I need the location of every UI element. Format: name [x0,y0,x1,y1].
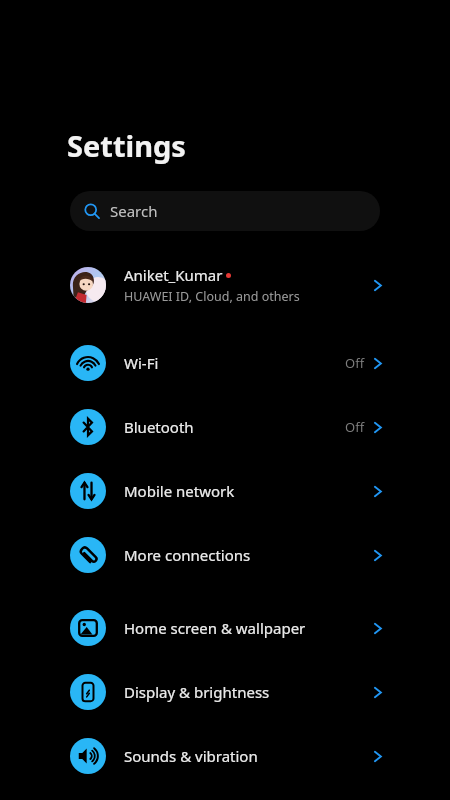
staticText: Search [110,201,158,221]
staticText: Sounds & vibration [124,746,371,766]
staticText: More connections [124,545,371,565]
button[interactable]: Mobile network [0,459,450,523]
staticText: Settings [67,126,186,165]
button[interactable]: More connections [0,523,450,587]
button[interactable]: Sounds & vibration [0,724,450,788]
button[interactable]: Aniket_Kumar [0,253,450,317]
staticText: HUAWEI ID, Cloud, and others [124,288,300,305]
button[interactable]: Search [70,191,380,231]
button[interactable]: Home screen & wallpaper [0,596,450,660]
staticText: Off [345,418,365,436]
button[interactable]: Display & brightness [0,660,450,724]
staticText: Wi-Fi [124,353,345,373]
staticText: Home screen & wallpaper [124,618,371,638]
button[interactable]: Bluetooth [0,395,450,459]
staticText: Mobile network [124,481,371,501]
staticText: Aniket_Kumar [124,265,223,285]
staticText: Bluetooth [124,417,345,437]
staticText: Display & brightness [124,682,371,702]
staticText: Off [345,354,365,372]
button[interactable]: Wi-Fi [0,331,450,395]
